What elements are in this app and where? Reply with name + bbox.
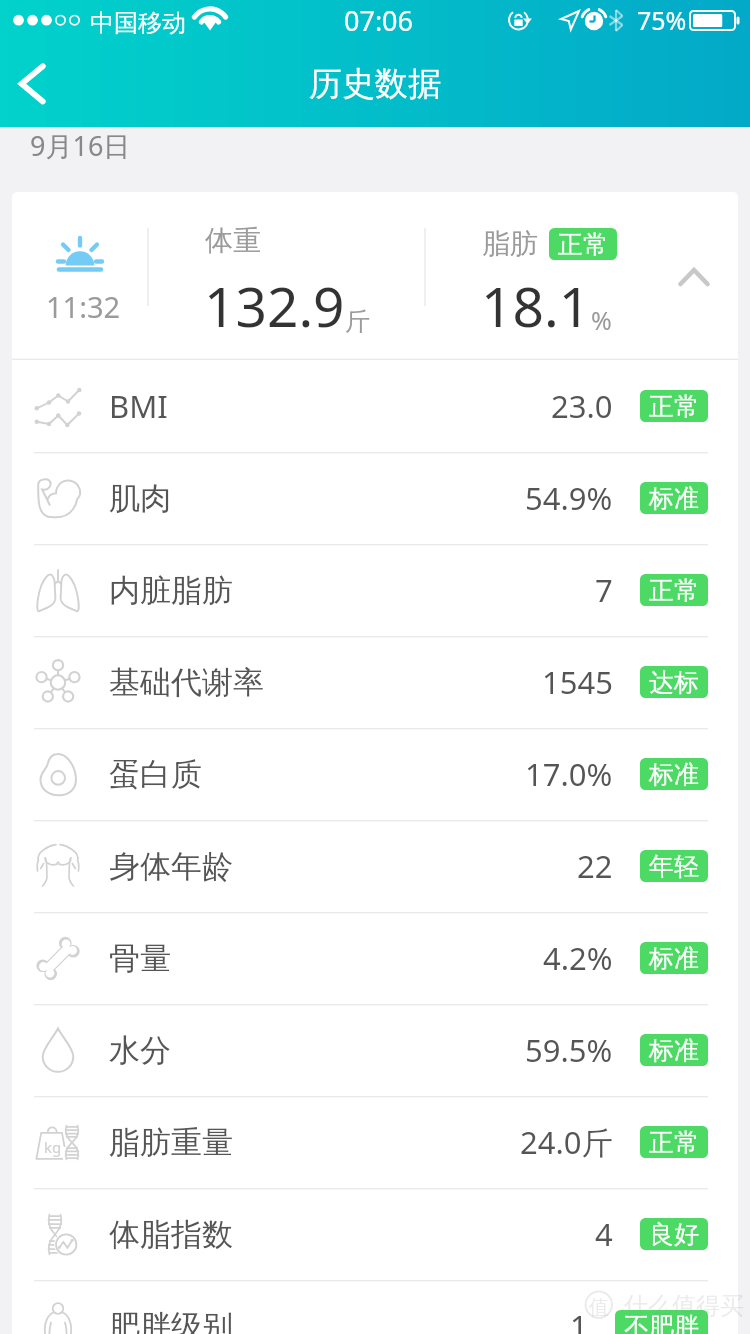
button[interactable]: 骨量 <box>12 912 738 1004</box>
staticText: 正常 <box>649 575 699 606</box>
staticText: 蛋白质 <box>109 755 202 794</box>
staticText: 基础代谢率 <box>109 663 264 702</box>
staticText: 4.2% <box>543 937 613 979</box>
staticText: 脂肪 <box>482 226 538 261</box>
staticText: 身体年龄 <box>109 847 233 886</box>
button[interactable]: kg <box>12 1096 738 1188</box>
staticText: 7 <box>595 569 613 611</box>
staticText: 正常 <box>649 1127 699 1158</box>
staticText: 年轻 <box>649 851 699 882</box>
staticText: 22 <box>577 845 613 887</box>
staticText: 标准 <box>649 759 699 790</box>
staticText: 9月16日 <box>30 127 131 164</box>
button[interactable]: 基础代谢率 <box>12 636 738 728</box>
staticText: 体脂指数 <box>109 1215 233 1254</box>
staticText: 1545 <box>542 661 613 703</box>
staticText: 24.0斤 <box>520 1121 613 1163</box>
staticText: 达标 <box>649 667 699 698</box>
button[interactable]: 内脏脂肪 <box>12 544 738 636</box>
staticText: 什么值得买 <box>624 1291 744 1321</box>
staticText: 标准 <box>649 483 699 514</box>
staticText: 23.0 <box>551 385 613 427</box>
staticText: 07:06 <box>344 2 414 39</box>
staticText: 骨量 <box>109 939 171 978</box>
staticText: 17.0% <box>525 753 613 795</box>
staticText: 11:32 <box>46 287 121 326</box>
staticText: 历史数据 <box>309 63 441 105</box>
button[interactable]: BMI <box>12 360 738 452</box>
staticText: 斤 <box>345 306 370 337</box>
staticText: % <box>591 303 612 337</box>
button[interactable]: 肌肉 <box>12 452 738 544</box>
staticText: 水分 <box>109 1031 171 1070</box>
staticText: 体重 <box>205 223 261 258</box>
button[interactable]: Collapse <box>654 237 734 317</box>
staticText: 肌肉 <box>109 479 171 518</box>
staticText: 75% <box>637 3 687 37</box>
staticText: 18.1 <box>481 268 591 343</box>
button[interactable]: 蛋白质 <box>12 728 738 820</box>
button[interactable]: 体脂指数 <box>12 1188 738 1280</box>
staticText: 不肥胖 <box>624 1311 699 1334</box>
staticText: 中国移动 <box>90 8 186 38</box>
staticText: kg <box>44 1137 62 1157</box>
button[interactable]: 身体年龄 <box>12 820 738 912</box>
staticText: 1 <box>570 1305 588 1334</box>
staticText: 标准 <box>649 943 699 974</box>
staticText: BMI <box>109 385 168 427</box>
staticText: 4 <box>595 1213 613 1255</box>
button[interactable]: 水分 <box>12 1004 738 1096</box>
staticText: 良好 <box>649 1219 699 1250</box>
staticText: 正常 <box>558 229 608 260</box>
staticText: 脂肪重量 <box>109 1123 233 1162</box>
staticText: 正常 <box>649 391 699 422</box>
staticText: 132.9 <box>204 268 345 343</box>
button[interactable]: 肥胖级别 <box>12 1280 738 1334</box>
staticText: 59.5% <box>525 1029 613 1071</box>
staticText: 标准 <box>649 1035 699 1066</box>
staticText: 54.9% <box>525 477 613 519</box>
staticText: 肥胖级别 <box>109 1307 233 1334</box>
staticText: 值 <box>589 1295 609 1320</box>
staticText: 内脏脂肪 <box>109 571 233 610</box>
button[interactable]: Back <box>0 44 76 127</box>
